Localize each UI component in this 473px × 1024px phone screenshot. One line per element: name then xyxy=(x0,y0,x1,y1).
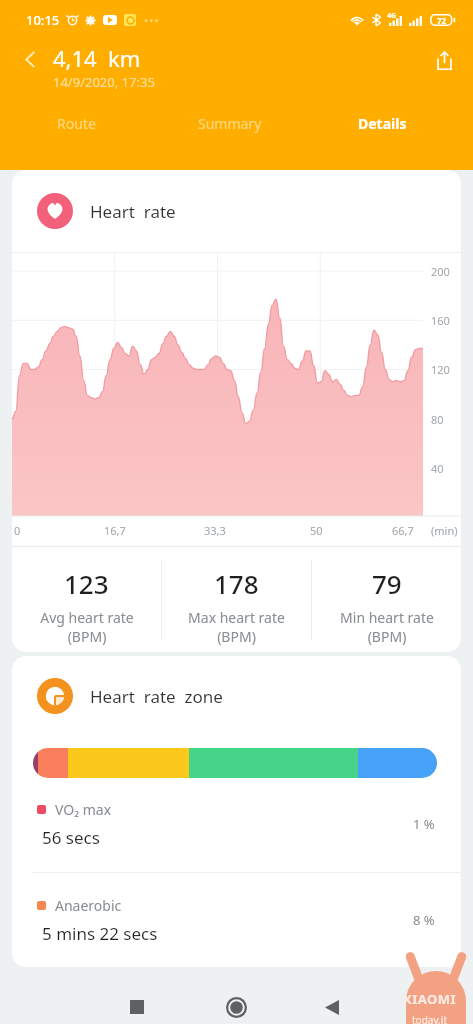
staticText: Heart rate xyxy=(90,200,176,223)
staticText: Min heart rate (BPM) xyxy=(340,608,434,646)
staticText: 50 xyxy=(310,523,323,538)
staticText: 120 xyxy=(431,362,450,377)
staticText: 14/9/2020, 17:35 xyxy=(53,73,155,91)
staticText: 40 xyxy=(431,461,444,476)
button[interactable]: Recent apps xyxy=(115,985,159,1024)
staticText: 4G xyxy=(387,11,397,21)
button[interactable]: Share xyxy=(429,45,459,75)
button[interactable]: Anaerobic xyxy=(37,896,435,967)
staticText: Route xyxy=(57,114,96,133)
staticText: 123 xyxy=(64,566,109,601)
staticText: ••• xyxy=(144,13,160,28)
staticText: 178 xyxy=(214,566,259,601)
staticText: today.it xyxy=(412,1013,447,1024)
staticText: Details xyxy=(358,114,407,133)
staticText: 160 xyxy=(431,313,450,328)
staticText: 0 xyxy=(14,523,21,538)
staticText: 200 xyxy=(431,264,450,279)
staticText: 8 % xyxy=(413,911,435,929)
button[interactable]: Details xyxy=(306,110,459,136)
button[interactable]: Route xyxy=(0,110,153,136)
button[interactable]: Back xyxy=(18,47,42,71)
button[interactable]: Back xyxy=(310,985,354,1024)
staticText: 79 xyxy=(372,566,402,601)
staticText: 16,7 xyxy=(104,523,126,538)
button[interactable]: Heart rate zone xyxy=(37,656,461,736)
staticText: 66,7 xyxy=(392,523,414,538)
button[interactable]: Summary xyxy=(153,110,306,136)
staticText: Anaerobic xyxy=(55,896,122,915)
staticText: Avg heart rate (BPM) xyxy=(40,608,134,646)
staticText: XIAOMI xyxy=(403,990,457,1008)
staticText: 80 xyxy=(431,412,444,427)
staticText: Max heart rate (BPM) xyxy=(188,608,285,646)
staticText: 1 % xyxy=(413,815,435,833)
button[interactable]: Heart rate zone distribution xyxy=(33,748,437,778)
staticText: Summary xyxy=(198,114,262,133)
staticText: 56 secs xyxy=(42,826,100,849)
staticText: 10:15 xyxy=(26,11,60,29)
staticText: Heart rate zone xyxy=(90,685,223,708)
button[interactable]: Home xyxy=(214,985,258,1024)
staticText: 72 xyxy=(437,15,447,26)
button[interactable]: Heart rate xyxy=(37,170,461,252)
staticText: 4,14 km xyxy=(53,43,141,73)
staticText: 5 mins 22 secs xyxy=(42,922,158,945)
staticText: 33,3 xyxy=(204,523,226,538)
button[interactable]: VO₂ max xyxy=(37,800,435,872)
staticText: VO₂ max xyxy=(55,800,112,819)
staticText: (min) xyxy=(431,523,458,538)
